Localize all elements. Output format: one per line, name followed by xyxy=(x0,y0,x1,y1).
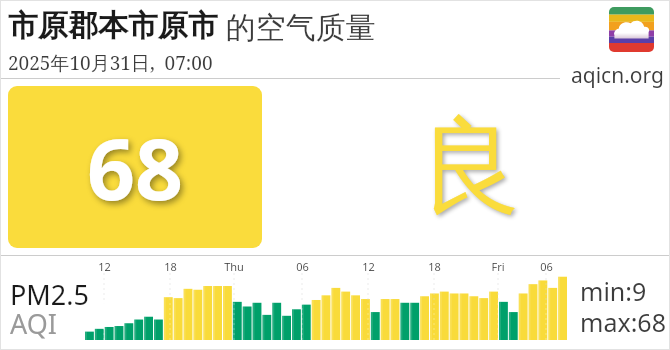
staticText: AQI xyxy=(10,305,57,342)
staticText: PM2.5 xyxy=(10,276,89,313)
staticText: 12 xyxy=(362,259,375,274)
button[interactable] xyxy=(85,258,568,340)
staticText: 的空气质量 xyxy=(218,6,376,46)
staticText: 18 xyxy=(428,259,441,274)
button[interactable]: aqicn.org logo xyxy=(609,7,654,52)
staticText: 06 xyxy=(540,259,553,274)
staticText: Thu xyxy=(224,259,244,274)
staticText: 06 xyxy=(296,259,309,274)
staticText: 18 xyxy=(164,259,177,274)
staticText: min:9 xyxy=(580,274,647,308)
staticText: 2025年10月31日, 07:00 xyxy=(8,50,213,76)
staticText: 68 xyxy=(87,110,184,224)
staticText: 12 xyxy=(98,259,111,274)
staticText: Fri xyxy=(491,259,505,274)
staticText: aqicn.org xyxy=(571,61,664,90)
staticText: 市原郡本市原市 xyxy=(8,7,218,45)
button[interactable]: 68 xyxy=(8,86,262,248)
staticText: 良 xyxy=(418,102,522,233)
staticText: max:68 xyxy=(580,305,666,339)
